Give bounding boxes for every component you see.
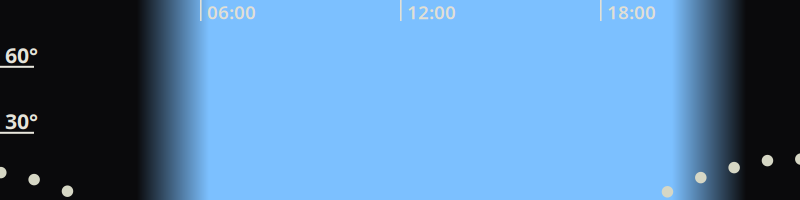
button[interactable]: Moon altitude chart <box>0 0 800 200</box>
staticText: 30° <box>5 107 38 135</box>
staticText: 12:00 <box>407 0 456 24</box>
staticText: 60° <box>5 41 38 69</box>
staticText: 18:00 <box>607 0 656 24</box>
staticText: 06:00 <box>207 0 256 24</box>
